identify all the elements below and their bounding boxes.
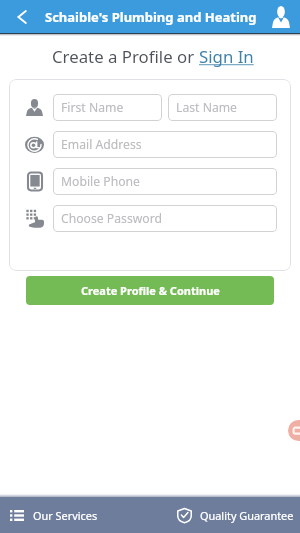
button[interactable]: Email Address	[53, 131, 277, 158]
staticText: Email Address	[61, 136, 142, 153]
button[interactable]: Back	[6, 0, 38, 34]
button[interactable]: Sign In	[199, 45, 254, 68]
staticText: Choose Password	[61, 210, 162, 227]
staticText: Create Profile & Continue	[81, 283, 220, 298]
staticText: Create a Profile or	[52, 45, 199, 68]
button[interactable]: Our Services	[0, 497, 150, 533]
staticText: Mobile Phone	[61, 173, 140, 190]
staticText: Last Name	[176, 99, 237, 116]
staticText: Schaible's Plumbing and Heating	[45, 8, 257, 34]
staticText: Quality Guarantee	[200, 508, 294, 523]
staticText: Sign In	[199, 45, 254, 68]
button[interactable]: First Name	[53, 94, 162, 121]
button[interactable]: Last Name	[168, 94, 277, 121]
button[interactable]: Quality Guarantee	[150, 497, 300, 533]
button[interactable]: Account	[266, 0, 296, 34]
button[interactable]: Create Profile & Continue	[26, 276, 274, 305]
button[interactable]: Mobile Phone	[53, 168, 277, 195]
staticText: Our Services	[33, 508, 98, 523]
staticText: First Name	[61, 99, 124, 116]
button[interactable]: Choose Password	[53, 205, 277, 232]
button[interactable]: Chat	[288, 420, 300, 441]
